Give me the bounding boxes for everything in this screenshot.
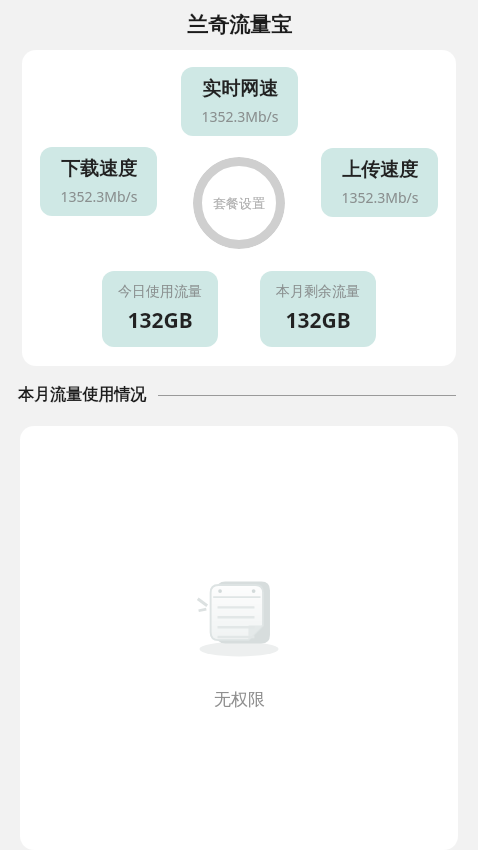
- staticText: 兰奇流量宝: [187, 12, 292, 38]
- button[interactable]: 套餐设置: [193, 157, 285, 249]
- staticText: 本月剩余流量: [276, 283, 360, 301]
- staticText: 1352.3Mb/s: [341, 188, 419, 207]
- button[interactable]: 本月剩余流量: [260, 271, 376, 347]
- staticText: 今日使用流量: [118, 283, 202, 301]
- staticText: 上传速度: [342, 158, 418, 182]
- button[interactable]: 下载速度: [40, 147, 157, 216]
- button[interactable]: 今日使用流量: [102, 271, 218, 347]
- staticText: 132GB: [127, 306, 193, 335]
- staticText: 1352.3Mb/s: [201, 107, 279, 126]
- staticText: 1352.3Mb/s: [60, 187, 138, 206]
- staticText: 无权限: [214, 689, 265, 710]
- button[interactable]: 实时网速: [181, 67, 298, 136]
- staticText: 套餐设置: [213, 195, 265, 211]
- staticText: 下载速度: [61, 157, 137, 181]
- button[interactable]: 上传速度: [321, 148, 438, 217]
- staticText: 本月流量使用情况: [18, 385, 146, 405]
- staticText: 实时网速: [202, 77, 278, 101]
- staticText: 132GB: [285, 306, 351, 335]
